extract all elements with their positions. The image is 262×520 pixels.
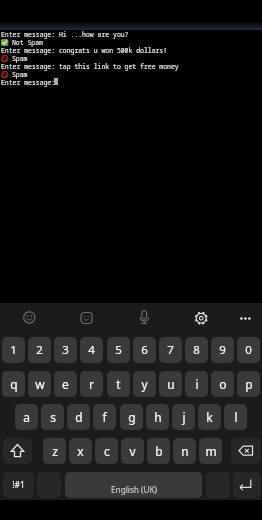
button[interactable]: c — [95, 438, 118, 464]
button[interactable]: b — [147, 438, 170, 464]
button[interactable] — [75, 306, 98, 329]
staticText: i — [195, 376, 199, 392]
button[interactable]: h — [146, 404, 169, 430]
staticText: d — [75, 409, 83, 425]
button[interactable]: m — [199, 438, 222, 464]
staticText: z — [52, 443, 58, 459]
button[interactable]: e — [54, 371, 77, 397]
button[interactable]: d — [67, 404, 90, 430]
button[interactable]: u — [159, 371, 182, 397]
staticText: m — [205, 443, 217, 459]
button[interactable]: r — [80, 371, 103, 397]
staticText: j — [182, 409, 186, 425]
staticText: 5 — [115, 342, 122, 358]
staticText: n — [181, 443, 189, 459]
staticText: Enter message: tap this link to get free… — [1, 62, 179, 71]
button[interactable]: w — [28, 371, 51, 397]
staticText: x — [77, 443, 84, 459]
button[interactable]: f — [93, 404, 116, 430]
button[interactable]: x — [69, 438, 92, 464]
button[interactable]: 8 — [185, 337, 208, 363]
staticText: 4 — [88, 342, 95, 358]
staticText: a — [23, 409, 30, 425]
button[interactable]: i — [185, 371, 208, 397]
staticText: f — [102, 409, 107, 425]
button[interactable] — [231, 438, 260, 464]
button[interactable]: 1 — [2, 337, 25, 363]
staticText: s — [50, 409, 56, 425]
button[interactable]: g — [120, 404, 143, 430]
button[interactable]: o — [211, 371, 234, 397]
button[interactable]: 2 — [28, 337, 51, 363]
button[interactable] — [133, 305, 156, 328]
staticText: Enter message: Hi ...how are you? — [1, 30, 129, 39]
staticText: t — [116, 376, 121, 392]
staticText: u — [167, 376, 175, 392]
button[interactable]: 6 — [133, 337, 156, 363]
staticText: p — [245, 376, 253, 392]
button[interactable]: 7 — [159, 337, 182, 363]
staticText: Enter message: congrats u won 500k dolla… — [1, 46, 168, 55]
button[interactable]: j — [172, 404, 195, 430]
button[interactable] — [18, 306, 41, 329]
staticText: 1 — [10, 342, 17, 358]
button[interactable]: v — [121, 438, 144, 464]
staticText: Spam — [12, 70, 28, 79]
button[interactable]: 4 — [80, 337, 103, 363]
button[interactable] — [3, 438, 32, 464]
staticText: q — [10, 376, 18, 392]
button[interactable]: y — [133, 371, 156, 397]
staticText: 3 — [62, 342, 69, 358]
button[interactable]: p — [237, 371, 260, 397]
staticText: 9 — [219, 342, 226, 358]
button[interactable] — [234, 307, 256, 329]
staticText: 7 — [167, 342, 174, 358]
button[interactable]: 3 — [54, 337, 77, 363]
button[interactable]: s — [41, 404, 64, 430]
staticText: e — [62, 376, 69, 392]
staticText: w — [35, 376, 45, 392]
staticText: English (UK) — [111, 484, 157, 495]
button[interactable] — [233, 472, 260, 498]
button[interactable]: k — [198, 404, 221, 430]
staticText: Spam — [12, 54, 28, 63]
staticText: r — [89, 376, 94, 392]
button[interactable] — [190, 306, 213, 329]
button[interactable]: a — [15, 404, 38, 430]
button[interactable]: !#1 — [3, 472, 34, 498]
staticText: o — [219, 376, 227, 392]
staticText: 6 — [141, 342, 148, 358]
staticText: c — [104, 443, 110, 459]
staticText: h — [154, 409, 162, 425]
staticText: g — [128, 409, 136, 425]
staticText: !#1 — [12, 479, 25, 491]
staticText: 8 — [193, 342, 200, 358]
button[interactable]: 0 — [237, 337, 260, 363]
button[interactable]: q — [2, 371, 25, 397]
staticText: b — [155, 443, 163, 459]
staticText: l — [234, 409, 238, 425]
button[interactable]: t — [107, 371, 130, 397]
button[interactable]: n — [173, 438, 196, 464]
staticText: 0 — [245, 342, 252, 358]
button[interactable]: 9 — [211, 337, 234, 363]
staticText: y — [141, 376, 148, 392]
staticText: 2 — [36, 342, 43, 358]
staticText: Not Spam — [12, 38, 43, 47]
button[interactable]: 5 — [107, 337, 130, 363]
staticText: v — [129, 443, 136, 459]
staticText: k — [206, 409, 213, 425]
button[interactable]: z — [43, 438, 66, 464]
button[interactable]: l — [224, 404, 247, 430]
button[interactable]: English (UK) — [65, 472, 202, 498]
staticText: Enter message: — [1, 78, 56, 87]
